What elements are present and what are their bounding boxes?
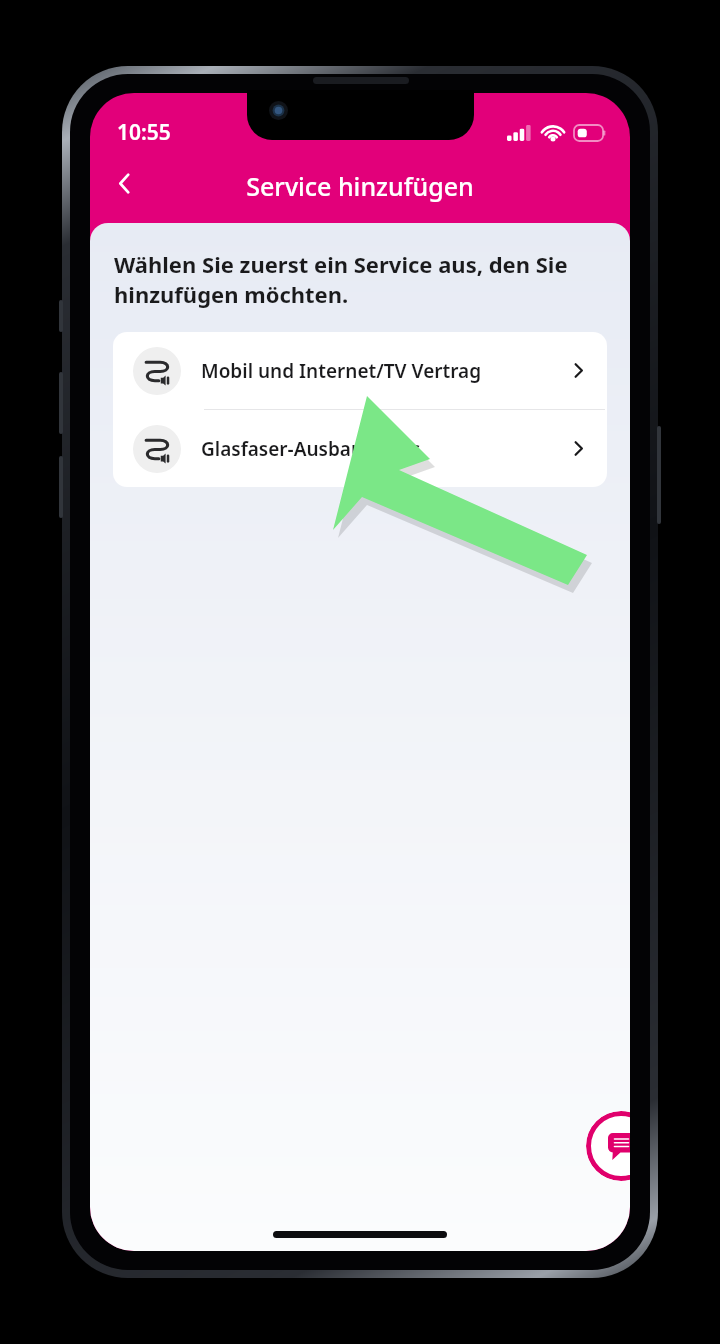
staticText: 10:55: [117, 118, 171, 147]
staticText: Wählen Sie zuerst ein Service aus, den S…: [114, 249, 606, 310]
button[interactable]: Chat: [586, 1111, 630, 1181]
staticText: Service hinzufügen: [246, 169, 474, 203]
button[interactable]: Mobil und Internet/TV Vertrag: [113, 332, 607, 409]
button[interactable]: Glasfaser-Ausbaustatus: [113, 410, 607, 487]
staticText: Mobil und Internet/TV Vertrag: [201, 358, 570, 384]
staticText: Glasfaser-Ausbaustatus: [201, 436, 570, 462]
button[interactable]: Back: [101, 160, 147, 206]
